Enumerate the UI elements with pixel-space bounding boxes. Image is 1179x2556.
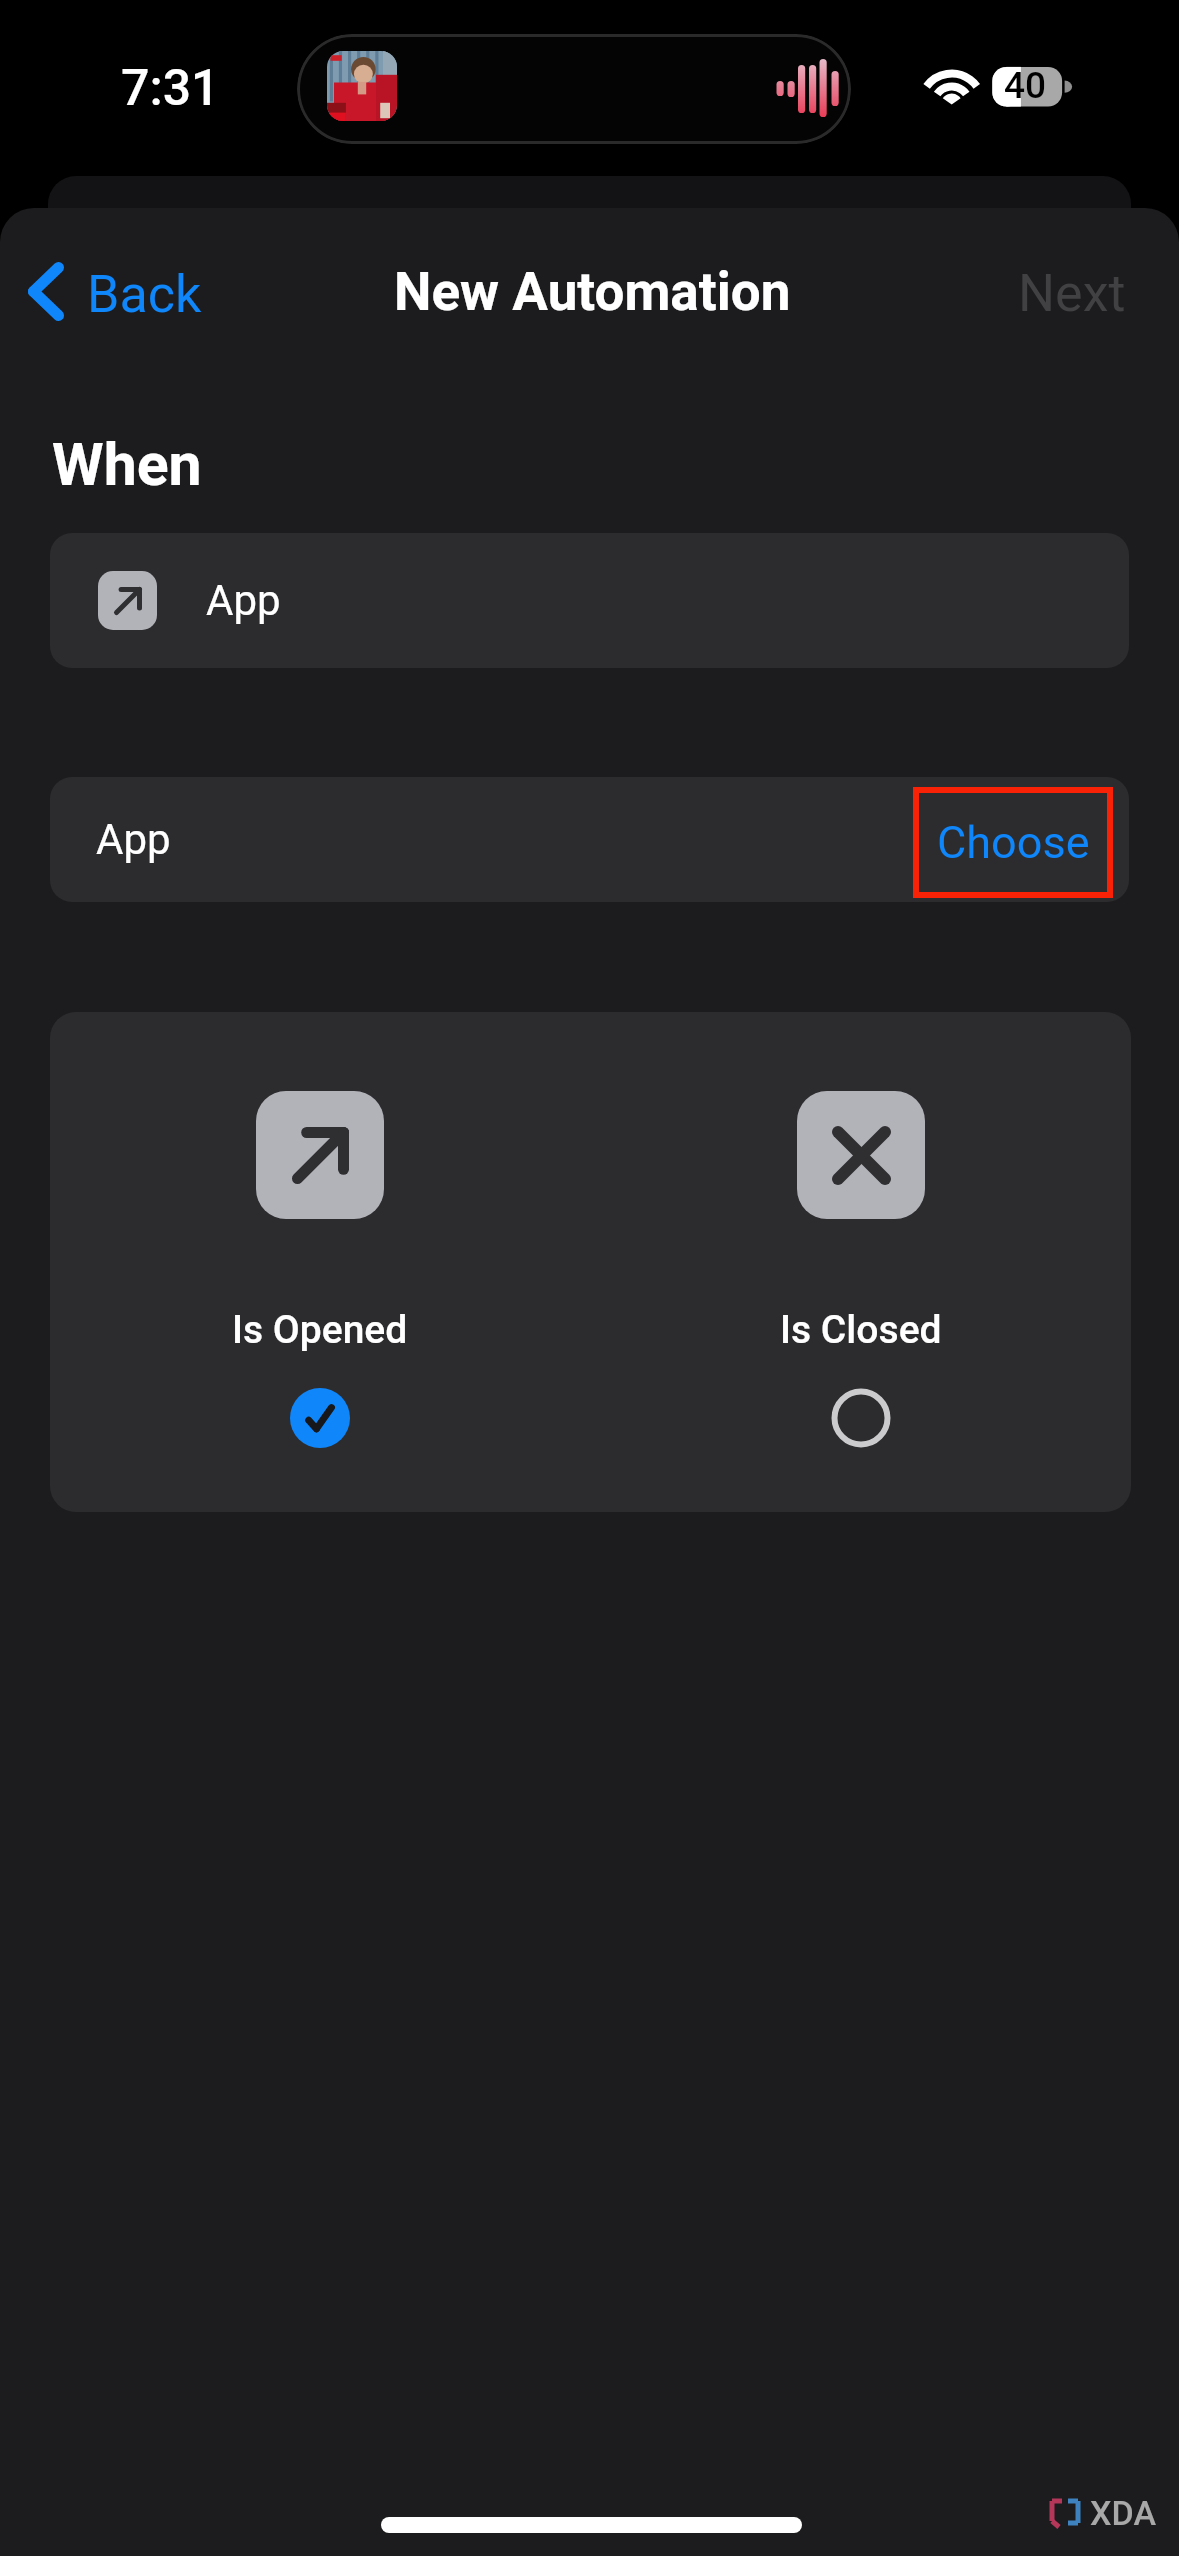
other: Open app <box>114 587 142 615</box>
button[interactable]: Is Opened <box>130 1012 510 1512</box>
staticText: Next <box>1018 263 1126 324</box>
staticText: App <box>96 815 171 864</box>
button[interactable]: Is Closed <box>671 1012 1051 1512</box>
other: Back <box>28 262 64 321</box>
staticText: App <box>206 576 281 625</box>
other: Is Closed <box>832 1126 891 1185</box>
other: Now playing <box>297 34 851 144</box>
staticText: When <box>52 430 202 499</box>
button[interactable]: Choose <box>913 787 1113 898</box>
staticText: Is Closed <box>780 1307 942 1353</box>
staticText: Choose <box>937 816 1090 869</box>
staticText: XDA <box>1090 2493 1157 2533</box>
staticText: Is Opened <box>232 1307 408 1353</box>
button[interactable]: Next <box>976 242 1168 345</box>
staticText: 7:31 <box>121 59 220 118</box>
staticText: New Automation <box>394 261 791 323</box>
staticText: 40 <box>1004 64 1047 107</box>
staticText: Back <box>87 264 202 325</box>
button[interactable]: Open app <box>50 533 1129 668</box>
other: Is Opened <box>292 1127 349 1184</box>
button[interactable]: Back <box>6 242 226 341</box>
